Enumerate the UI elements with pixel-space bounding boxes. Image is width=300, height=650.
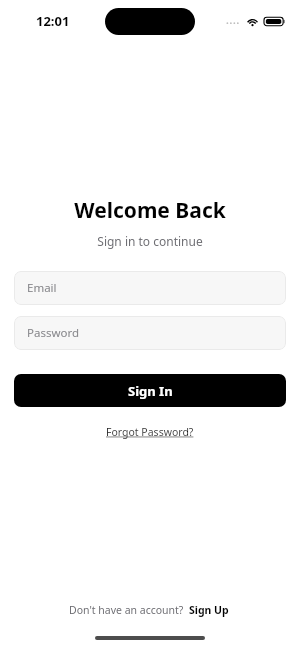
staticText: Welcome Back [14, 196, 286, 225]
staticText: Email [27, 280, 57, 296]
staticText: Sign Up [189, 603, 229, 617]
staticText: 12:01 [36, 12, 70, 30]
button[interactable]: Sign In [14, 374, 286, 407]
staticText: Sign In [128, 382, 173, 400]
staticText: Password [27, 325, 80, 341]
staticText: Forgot Password? [106, 425, 194, 439]
button[interactable]: Sign Up [187, 601, 231, 619]
staticText: Sign in to continue [14, 233, 286, 249]
button[interactable]: Email [14, 271, 286, 305]
staticText: Don't have an account? [69, 603, 187, 617]
button[interactable]: Password [14, 316, 286, 350]
button[interactable]: Forgot Password? [102, 423, 198, 441]
